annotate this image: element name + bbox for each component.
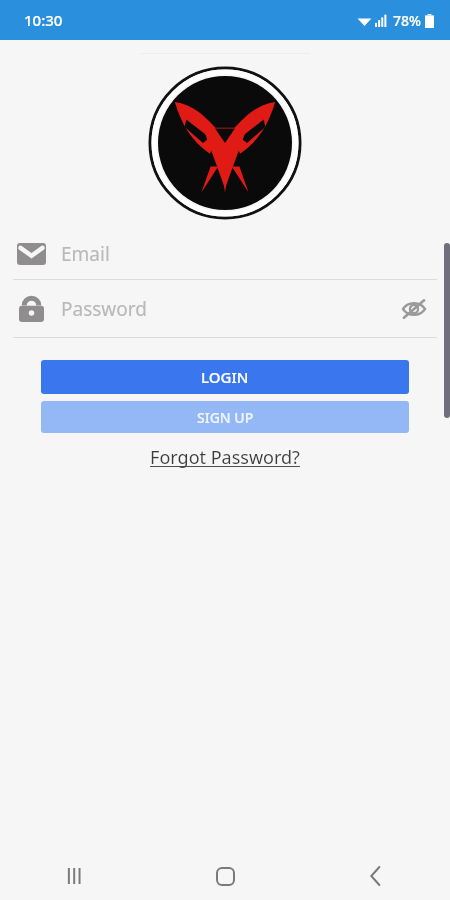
button[interactable]: SIGN UP [41, 401, 409, 433]
button[interactable]: LOGIN [41, 360, 409, 394]
button[interactable]: Recents [51, 852, 99, 900]
staticText: Email [61, 241, 110, 267]
staticText: SIGN UP [197, 408, 254, 427]
staticText: Password [61, 296, 147, 322]
staticText: LOGIN [201, 367, 249, 387]
button[interactable]: Forgot Password? [142, 443, 308, 472]
staticText: 10:30 [24, 10, 63, 30]
button[interactable]: Show password [394, 289, 434, 329]
button[interactable]: Email [0, 228, 450, 279]
staticText: Forgot Password? [150, 445, 300, 470]
button[interactable]: Home [201, 852, 249, 900]
button[interactable]: Back [351, 852, 399, 900]
button[interactable]: Password [0, 280, 450, 337]
staticText: 78% [393, 11, 421, 30]
